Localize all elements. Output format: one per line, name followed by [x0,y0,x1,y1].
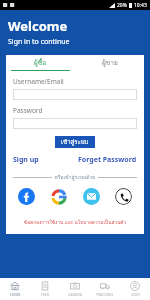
button[interactable]: Sign in with Email [83,188,100,205]
staticText: USER [131,292,140,297]
staticText: ข้อตกลงการใช้งาน และ นโยบายความเป็นส่วนต… [13,218,137,226]
button[interactable] [13,89,137,100]
staticText: Forget Password [78,155,137,165]
staticText: CAMERA [68,292,82,297]
staticText: 10:43 [134,2,147,9]
button[interactable]: HOME [0,278,30,300]
button[interactable]: CAMERA [60,278,90,300]
button[interactable]: TRACKING [90,278,120,300]
button[interactable]: Sign up [13,155,39,165]
staticText: TRACKING [96,292,114,297]
button[interactable]: FEED [30,278,60,300]
button[interactable]: Sign in with Phone [115,188,132,205]
button[interactable]: USER [120,278,150,300]
button[interactable]: ผู้ขาย [75,55,144,71]
staticText: ผู้ซื้อ [34,58,47,68]
button[interactable]: Sign in with Google [50,188,67,205]
button[interactable]: ผู้ซื้อ [6,55,75,71]
staticText: HOME [10,292,21,297]
button[interactable]: Sign in with Facebook [18,188,35,205]
staticText: Sign up [13,155,39,165]
button[interactable]: Forget Password [78,155,137,165]
staticText: เข้าสู่ระบบ [61,137,89,147]
staticText: Password [13,106,43,115]
button[interactable] [13,118,137,129]
staticText: Username/Email [13,77,64,86]
staticText: หรือเข้าสู่ระบบด้วย [52,173,98,181]
button[interactable]: เข้าสู่ระบบ [55,136,95,148]
staticText: Welcome [8,17,68,35]
staticText: FEED [41,292,50,297]
staticText: Sign in to continue [8,37,70,47]
staticText: ผู้ขาย [102,58,118,68]
staticText: 20% [117,2,127,9]
